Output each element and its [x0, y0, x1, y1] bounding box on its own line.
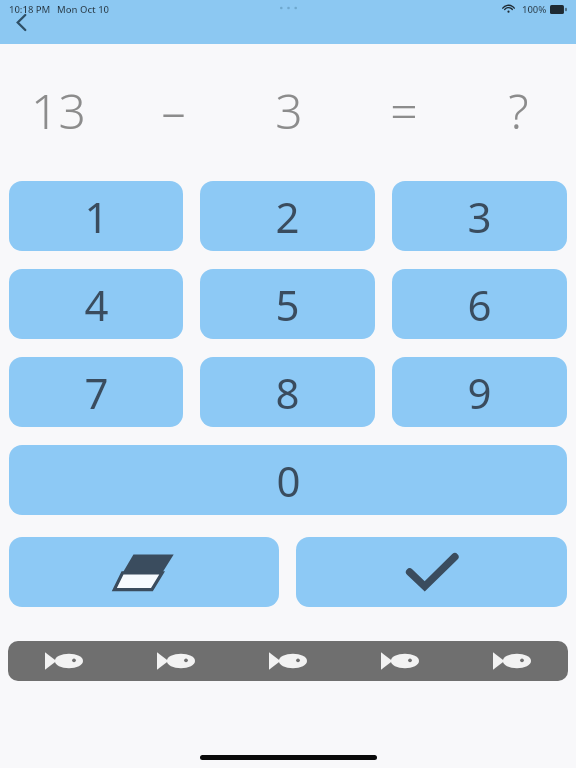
- button[interactable]: 0: [9, 445, 567, 515]
- staticText: –: [161, 78, 186, 143]
- staticText: 0: [276, 452, 301, 509]
- staticText: 10:18 PM: [9, 3, 51, 16]
- staticText: 4: [84, 276, 109, 333]
- staticText: 100%: [522, 3, 547, 16]
- staticText: 5: [275, 276, 300, 333]
- staticText: 6: [467, 276, 492, 333]
- button[interactable]: 7: [9, 357, 183, 427]
- button[interactable]: Erase: [9, 537, 279, 607]
- staticText: 13: [31, 78, 86, 143]
- staticText: 7: [84, 364, 109, 421]
- button[interactable]: 6: [392, 269, 567, 339]
- button[interactable]: 1: [9, 181, 183, 251]
- button[interactable]: 4: [9, 269, 183, 339]
- button[interactable]: 8: [200, 357, 375, 427]
- staticText: 3: [275, 78, 303, 143]
- staticText: 3: [467, 188, 492, 245]
- button[interactable]: 5: [200, 269, 375, 339]
- staticText: 1: [84, 188, 109, 245]
- button[interactable]: 9: [392, 357, 567, 427]
- staticText: =: [390, 78, 418, 143]
- button[interactable]: Submit answer: [296, 537, 567, 607]
- button[interactable]: 2: [200, 181, 375, 251]
- staticText: 2: [275, 188, 300, 245]
- staticText: 8: [275, 364, 300, 421]
- staticText: Mon Oct 10: [57, 3, 110, 16]
- button[interactable]: Back: [4, 5, 38, 39]
- staticText: 9: [467, 364, 492, 421]
- staticText: ?: [508, 78, 529, 143]
- button[interactable]: 3: [392, 181, 567, 251]
